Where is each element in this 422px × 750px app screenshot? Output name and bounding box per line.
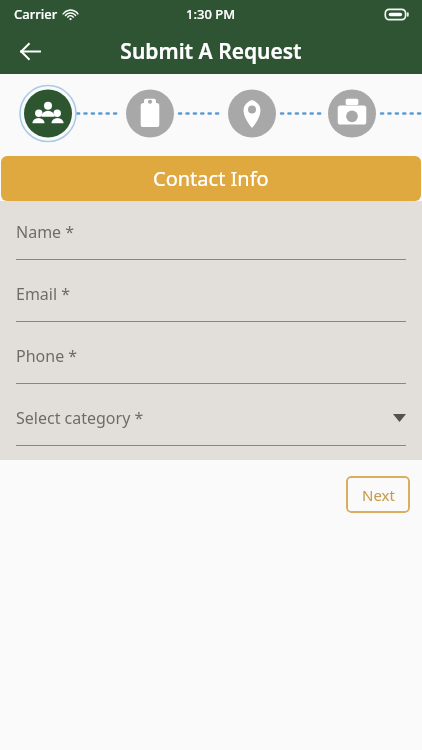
staticText: Contact Info bbox=[153, 165, 269, 192]
staticText: Carrier bbox=[14, 5, 58, 23]
button[interactable]: Next bbox=[346, 476, 410, 513]
staticText: Next bbox=[362, 485, 395, 505]
button[interactable]: Phone * bbox=[16, 343, 406, 384]
button[interactable]: Select category * bbox=[16, 405, 406, 446]
staticText: Email * bbox=[16, 283, 71, 305]
staticText: Select category * bbox=[16, 407, 144, 429]
button[interactable]: Details step bbox=[124, 87, 176, 139]
button[interactable]: Email * bbox=[16, 281, 406, 322]
staticText: 1:30 PM bbox=[186, 5, 236, 23]
button[interactable]: Photo step bbox=[326, 87, 378, 139]
button[interactable]: Contact Info bbox=[1, 156, 421, 201]
button[interactable]: Contact info step bbox=[22, 87, 74, 139]
staticText: Name * bbox=[16, 221, 75, 243]
staticText: Phone * bbox=[16, 345, 78, 367]
button[interactable]: Name * bbox=[16, 219, 406, 260]
staticText: Submit A Request bbox=[120, 37, 302, 66]
button[interactable]: Back bbox=[10, 31, 50, 71]
button[interactable]: Location step bbox=[226, 87, 278, 139]
